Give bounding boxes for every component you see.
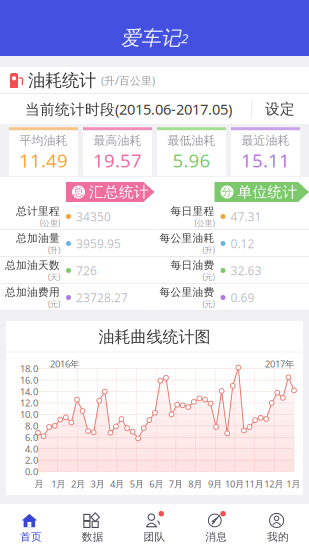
staticText: 最高油耗 [93,133,141,148]
staticText: 6.0 [25,431,38,443]
staticText: 12.0 [20,397,38,409]
staticText: 4.0 [25,443,38,455]
staticText: (元) [48,299,60,309]
button[interactable]: 首页 [0,504,62,550]
staticText: 7月 [169,478,183,490]
staticText: 726 [76,262,97,278]
staticText: 单位统计 [237,183,297,201]
staticText: 6月 [149,478,163,490]
staticText: 12月 [264,478,283,490]
button[interactable]: 当前统计时段(2015.06-2017.05) [0,94,309,124]
staticText: 月 [34,478,43,490]
staticText: 总 [73,185,84,198]
staticText: 19.57 [93,148,142,173]
staticText: 每公里油耗 [159,232,214,245]
staticText: 5.96 [172,148,210,173]
staticText: 设定 [265,100,295,118]
staticText: 2 [181,29,188,47]
staticText: 47.31 [230,208,261,224]
staticText: 油耗曲线统计图 [98,327,210,347]
staticText: 16.0 [20,374,38,386]
staticText: 0.0 [25,465,38,478]
staticText: 每日里程 [170,205,214,218]
staticText: 15.11 [241,148,290,173]
staticText: 总加油费用 [5,286,60,299]
staticText: 14.0 [20,385,38,398]
staticText: 2016年 [50,358,79,370]
staticText: 汇总统计 [89,183,149,201]
staticText: 消息 [205,530,227,543]
staticText: 8月 [188,478,202,490]
staticText: 2.0 [25,454,38,466]
staticText: 油耗统计 [28,70,96,91]
staticText: 总加油天数 [5,259,60,272]
staticText: (公里) [194,218,214,228]
staticText: 3月 [90,478,104,490]
staticText: 我的 [267,530,289,543]
staticText: 0.69 [230,289,254,305]
staticText: 11.49 [19,148,68,173]
staticText: (元) [202,299,214,309]
staticText: 总加油量 [16,232,60,245]
staticText: 团队 [143,530,165,543]
staticText: 0.12 [230,235,254,251]
staticText: 每日油费 [170,259,214,272]
staticText: 平均油耗 [19,133,67,148]
staticText: 2月 [71,478,85,490]
staticText: 当前统计时段(2015.06-2017.05) [25,99,232,119]
staticText: 3959.95 [76,235,121,251]
staticText: 10月 [225,478,244,490]
staticText: 每公里油费 [159,286,214,299]
staticText: 1月 [286,478,300,490]
staticText: 最近油耗 [241,133,289,148]
staticText: 1月 [51,478,65,490]
staticText: 10.0 [20,408,38,421]
staticText: (升/百公里) [101,73,155,88]
staticText: 最低油耗 [167,133,215,148]
staticText: 5月 [130,478,144,490]
staticText: 18.0 [20,362,38,375]
staticText: 32.63 [230,262,261,278]
staticText: 4月 [110,478,124,490]
staticText: (天) [48,272,60,282]
button[interactable]: 我的 [247,504,309,550]
staticText: 23728.27 [76,289,128,305]
staticText: 9月 [208,478,222,490]
staticText: 爱车记 [121,26,181,50]
staticText: (元) [202,272,214,282]
staticText: 总计里程 [16,205,60,218]
staticText: 分 [221,185,232,198]
staticText: (升) [202,245,214,255]
staticText: 8.0 [25,420,38,432]
staticText: (升) [48,245,60,255]
staticText: 34350 [76,208,111,224]
staticText: 11月 [245,478,264,490]
staticText: 2017年 [265,358,294,370]
button[interactable]: 团队 [124,504,185,550]
button[interactable]: 数据 [62,504,124,550]
staticText: (公里) [40,218,60,228]
staticText: 数据 [82,530,104,543]
staticText: 首页 [20,530,42,543]
button[interactable]: 消息 [185,504,247,550]
